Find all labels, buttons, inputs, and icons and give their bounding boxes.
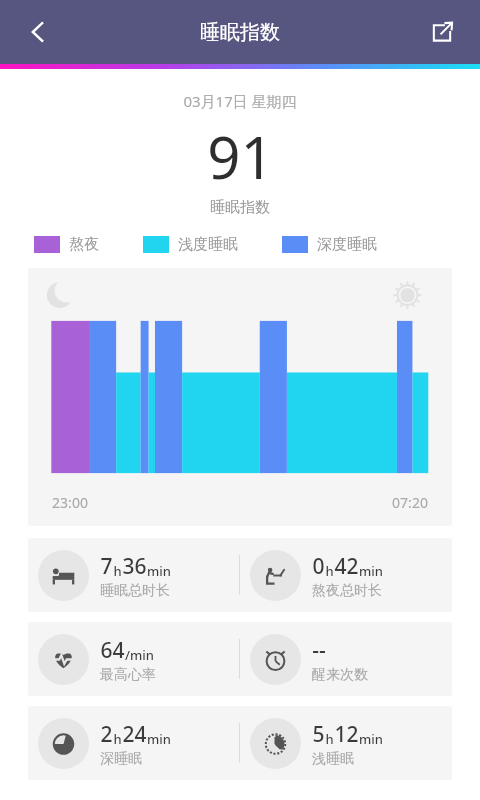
staticText: 42 <box>334 552 359 581</box>
staticText: 64 <box>100 636 125 665</box>
staticText: 睡眠指数 <box>210 198 270 217</box>
staticText: 深度睡眠 <box>317 235 377 254</box>
button[interactable]: 23:00 <box>28 268 452 526</box>
staticText: min <box>147 730 171 748</box>
staticText: 2 <box>100 720 113 749</box>
staticText: min <box>359 730 383 748</box>
staticText: 03月17日 星期四 <box>183 91 297 111</box>
staticText: /min <box>125 646 154 664</box>
button[interactable]: Share <box>418 8 466 56</box>
staticText: 睡眠指数 <box>200 20 280 45</box>
staticText: 7 <box>100 552 113 581</box>
staticText: 浅度睡眠 <box>178 235 238 254</box>
staticText: 熬夜 <box>69 235 99 254</box>
staticText: 浅睡眠 <box>312 750 354 768</box>
staticText: h <box>113 562 122 580</box>
button[interactable]: Back <box>14 8 62 56</box>
staticText: h <box>113 730 122 748</box>
staticText: h <box>325 562 334 580</box>
staticText: h <box>325 730 334 748</box>
staticText: 最高心率 <box>100 666 156 684</box>
button[interactable]: 5 <box>240 718 452 769</box>
staticText: 24 <box>122 720 147 749</box>
staticText: 睡眠总时长 <box>100 582 170 600</box>
staticText: -- <box>312 636 326 665</box>
button[interactable]: -- <box>240 634 452 685</box>
staticText: 36 <box>122 552 147 581</box>
button[interactable]: 64 <box>28 634 239 685</box>
staticText: 91 <box>207 117 274 196</box>
staticText: 12 <box>334 720 359 749</box>
staticText: min <box>359 562 383 580</box>
staticText: 深睡眠 <box>100 750 142 768</box>
staticText: 5 <box>312 720 325 749</box>
staticText: min <box>147 562 171 580</box>
staticText: 熬夜总时长 <box>312 582 382 600</box>
staticText: 07:20 <box>392 493 428 512</box>
staticText: 0 <box>312 552 325 581</box>
button[interactable]: 0 <box>240 550 452 601</box>
staticText: 醒来次数 <box>312 666 368 684</box>
staticText: 23:00 <box>52 493 88 512</box>
button[interactable]: 7 <box>28 550 239 601</box>
button[interactable]: 2 <box>28 718 239 769</box>
